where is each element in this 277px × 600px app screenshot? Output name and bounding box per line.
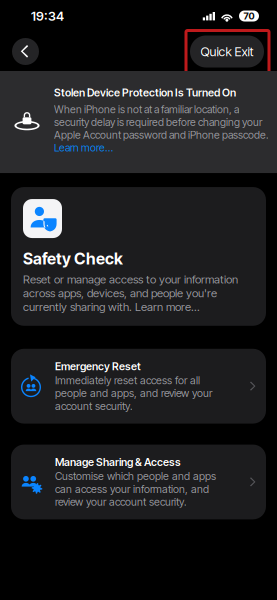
button[interactable]: Back [12, 38, 39, 65]
staticText: Emergency Reset [55, 360, 141, 373]
button[interactable]: Emergency Reset [11, 349, 266, 424]
button[interactable]: Manage Sharing & Access [11, 445, 266, 519]
button[interactable]: Quick Exit [190, 35, 264, 67]
staticText: Immediately reset access for all people … [55, 374, 212, 413]
staticText: Quick Exit [200, 44, 253, 59]
staticText: 70 [243, 10, 254, 22]
staticText: Customise which people and apps can acce… [55, 470, 216, 508]
staticText: 19:34 [31, 8, 64, 24]
staticText: Manage Sharing & Access [55, 456, 181, 469]
staticText: Safety Check [23, 249, 123, 268]
staticText: When iPhone is not at a familiar locatio… [54, 103, 269, 141]
staticText: Reset or manage access to your informati… [23, 272, 238, 314]
button[interactable]: Learn more… [54, 141, 113, 154]
staticText: Stolen Device Protection Is Turned On [54, 86, 236, 99]
staticText: Learn more… [54, 141, 113, 154]
